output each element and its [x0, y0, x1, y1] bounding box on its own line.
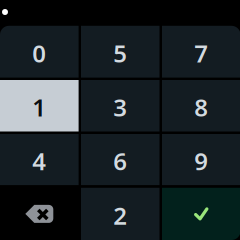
staticText: 9: [194, 145, 208, 177]
button[interactable]: 5: [81, 26, 159, 78]
button[interactable]: 2: [81, 188, 159, 240]
staticText: 0: [32, 37, 46, 69]
button[interactable]: 4: [0, 134, 79, 185]
staticText: 7: [194, 37, 208, 69]
button[interactable]: 9: [162, 134, 240, 185]
staticText: 1: [32, 91, 46, 123]
button[interactable]: Confirm: [162, 188, 240, 240]
staticText: 2: [113, 199, 127, 231]
staticText: 6: [113, 145, 127, 177]
button[interactable]: 0: [0, 26, 79, 78]
staticText: 3: [113, 91, 127, 123]
button[interactable]: 3: [81, 80, 159, 131]
staticText: 8: [194, 91, 208, 123]
button[interactable]: Delete: [0, 188, 79, 240]
button[interactable]: 7: [162, 26, 240, 78]
button[interactable]: 1: [0, 80, 79, 131]
staticText: 5: [113, 37, 127, 69]
staticText: 4: [32, 145, 46, 177]
button[interactable]: 8: [162, 80, 240, 131]
button[interactable]: 6: [81, 134, 159, 185]
